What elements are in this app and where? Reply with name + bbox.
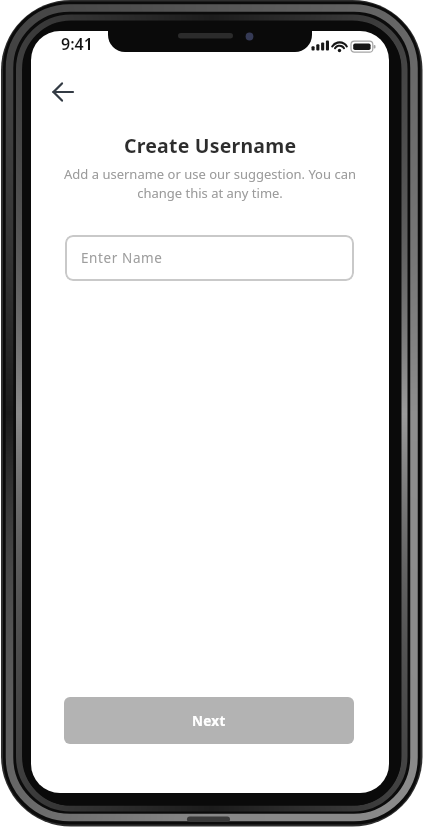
staticText: Add a username or use our suggestion. Yo… — [64, 165, 356, 202]
button[interactable] — [44, 74, 80, 110]
staticText: Next — [192, 712, 226, 730]
staticText: Create Username — [124, 132, 297, 158]
staticText: Enter Name — [81, 249, 163, 267]
button[interactable]: Next — [64, 697, 354, 744]
staticText: 9:41 — [61, 33, 93, 54]
button[interactable]: Enter Name — [65, 235, 354, 281]
